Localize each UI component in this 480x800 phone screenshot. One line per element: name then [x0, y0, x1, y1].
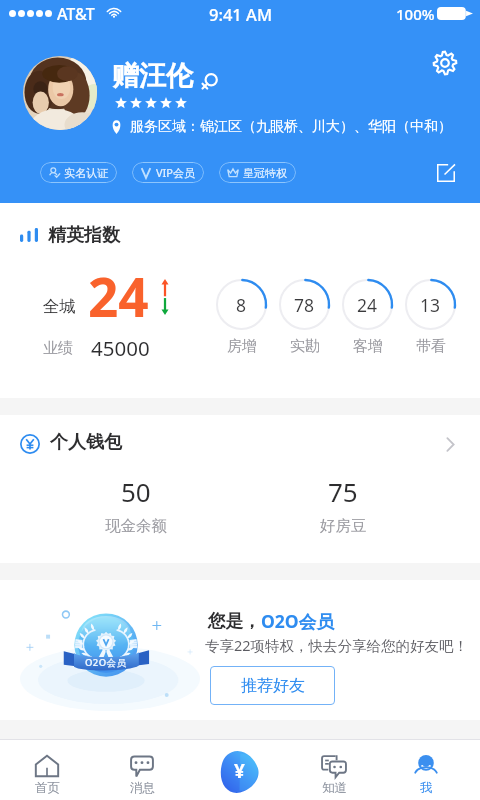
- button[interactable]: 78: [279, 279, 330, 356]
- staticText: 首页: [35, 780, 60, 796]
- staticText: 全城: [43, 296, 76, 317]
- staticText: 您是，: [208, 610, 261, 632]
- button[interactable]: Wallet: [220, 750, 259, 793]
- staticText: 50: [121, 474, 151, 509]
- staticText: 带看: [416, 337, 446, 356]
- button[interactable]: 24: [342, 279, 393, 356]
- staticText: O2O会员: [261, 609, 334, 633]
- staticText: 24: [88, 260, 149, 332]
- button[interactable]: 我: [382, 739, 470, 800]
- staticText: 推荐好友: [241, 676, 305, 696]
- staticText: 皇冠特权: [243, 166, 287, 180]
- staticText: 消息: [130, 780, 155, 796]
- button[interactable]: 8: [216, 279, 267, 356]
- staticText: 实勘: [290, 337, 320, 356]
- staticText: 知道: [322, 780, 347, 796]
- staticText: 服务区域：锦江区（九眼桥、川大）、华阳（中和）: [130, 118, 452, 136]
- staticText: O2O会员: [85, 656, 127, 669]
- staticText: 业绩: [43, 339, 73, 358]
- button[interactable]: Edit profile: [432, 159, 460, 187]
- staticText: 9:41 AM: [209, 3, 273, 25]
- staticText: 45000: [91, 334, 150, 362]
- staticText: 好房豆: [320, 516, 367, 536]
- staticText: 专享22项特权，快去分享给您的好友吧！: [205, 635, 469, 655]
- button[interactable]: 13: [405, 279, 456, 356]
- staticText: 75: [328, 474, 358, 509]
- button[interactable]: 实名认证: [40, 162, 117, 183]
- button[interactable]: 首页: [3, 739, 91, 800]
- staticText: 24: [357, 293, 378, 317]
- button[interactable]: Settings: [428, 46, 462, 80]
- staticText: 13: [420, 293, 441, 317]
- staticText: 100%: [396, 4, 435, 24]
- staticText: 客增: [353, 337, 383, 356]
- staticText: 房增: [227, 337, 257, 356]
- button[interactable]: 知道: [290, 739, 378, 800]
- staticText: VIP会员: [156, 165, 195, 180]
- staticText: 实名认证: [64, 166, 108, 180]
- staticText: 赠汪伦: [112, 59, 193, 93]
- button[interactable]: 皇冠特权: [219, 162, 296, 183]
- staticText: AT&T: [57, 3, 95, 25]
- button[interactable]: VIP会员: [132, 162, 204, 183]
- button[interactable]: 推荐好友: [210, 666, 335, 705]
- staticText: 现金余额: [105, 516, 167, 536]
- button[interactable]: Avatar: [23, 56, 97, 130]
- button[interactable]: 个人钱包: [0, 415, 480, 563]
- staticText: 我: [420, 780, 433, 796]
- staticText: 8: [236, 293, 247, 317]
- staticText: ¥: [234, 758, 245, 784]
- staticText: 精英指数: [48, 224, 120, 247]
- staticText: 78: [294, 293, 315, 317]
- staticText: 个人钱包: [50, 431, 122, 454]
- button[interactable]: 消息: [98, 739, 186, 800]
